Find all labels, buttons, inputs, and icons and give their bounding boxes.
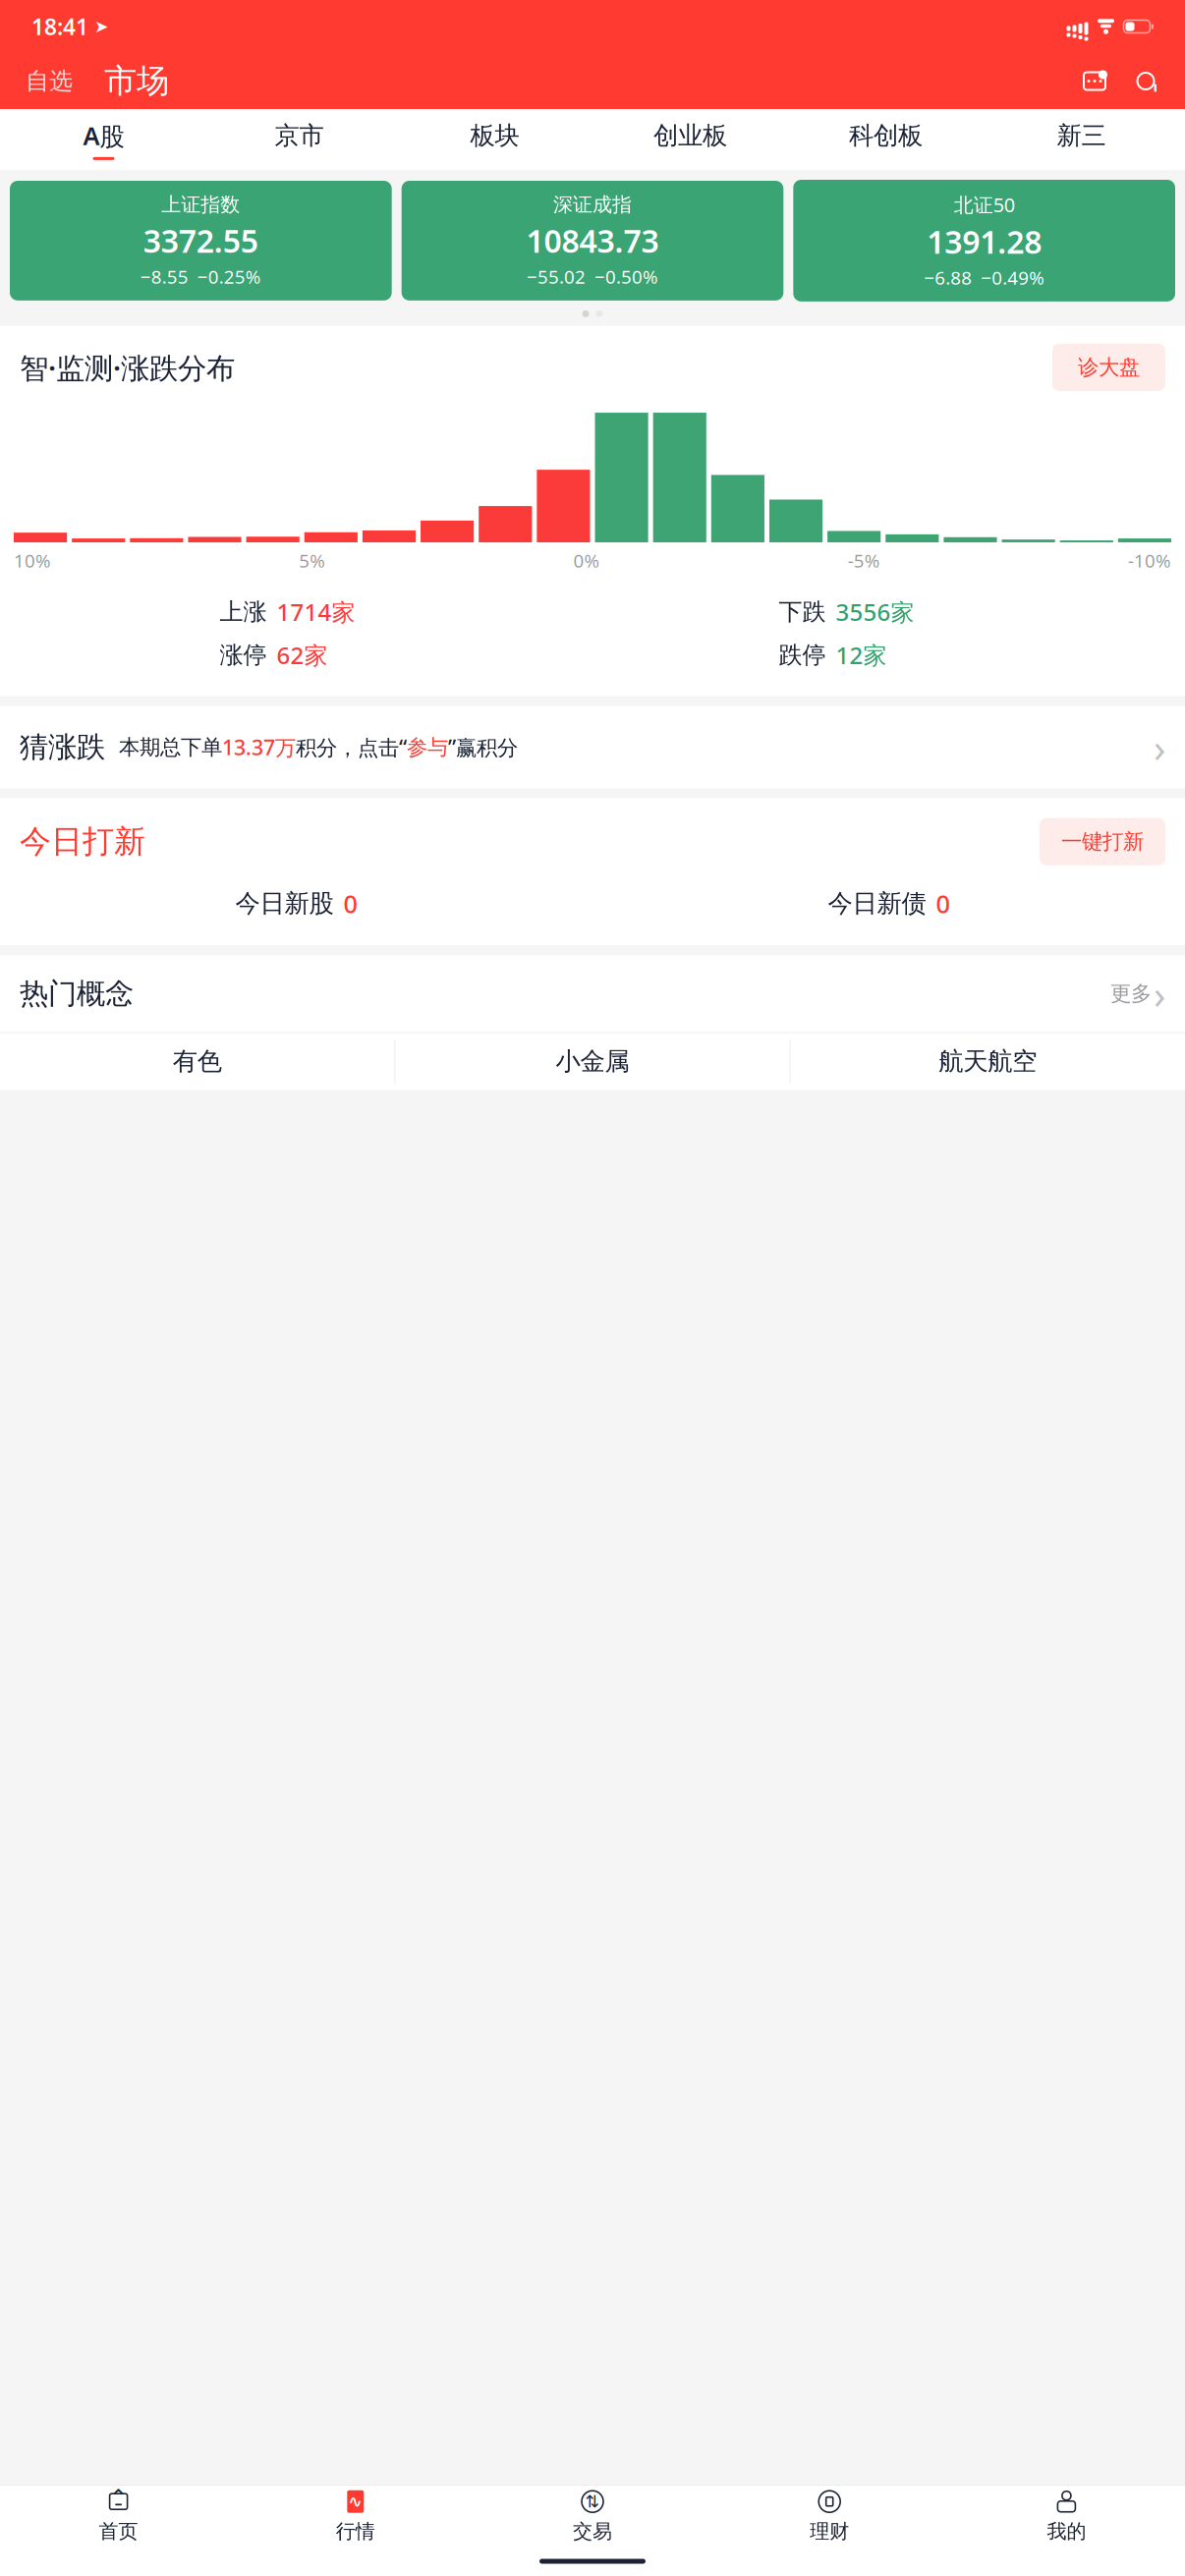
button[interactable]: 板块	[397, 109, 592, 170]
button[interactable]: 市场	[94, 57, 179, 105]
button[interactable]: 搜索	[1126, 61, 1165, 101]
staticText: 诊大盘	[1078, 354, 1140, 380]
button[interactable]: 猜涨跌	[0, 706, 1185, 789]
staticText: −55.02	[527, 264, 586, 289]
staticText: −8.55	[140, 264, 188, 289]
staticText: ➤	[88, 17, 109, 36]
staticText: −0.49%	[981, 265, 1045, 290]
button[interactable]: 更多	[1110, 968, 1165, 1020]
button[interactable]: 理财	[711, 2486, 948, 2547]
staticText: 0	[936, 887, 950, 920]
button[interactable]: 今日新股	[0, 887, 592, 920]
staticText: 新三	[1057, 120, 1106, 151]
staticText: -5%	[848, 548, 880, 573]
staticText: ∿	[348, 2492, 363, 2511]
button[interactable]: 我的	[948, 2486, 1185, 2547]
button[interactable]: ⌃	[0, 2486, 237, 2547]
staticText: 猜涨跌	[20, 730, 105, 765]
staticText: 0%	[573, 548, 600, 573]
button[interactable]: ⇅	[474, 2486, 711, 2547]
staticText: -10%	[1128, 548, 1171, 573]
staticText: 3372.55	[143, 220, 258, 261]
staticText: 10843.73	[526, 220, 659, 261]
staticText: ›	[1154, 968, 1165, 1020]
staticText: 更多	[1110, 981, 1152, 1007]
staticText: 航天航空	[939, 1046, 1037, 1077]
staticText: 涨停	[220, 640, 267, 669]
button[interactable]: 消息	[1075, 61, 1114, 101]
staticText: 参与	[407, 734, 448, 760]
staticText: 理财	[810, 2519, 849, 2543]
button[interactable]: 科创板	[788, 109, 984, 170]
staticText: 今日打新	[20, 822, 145, 861]
staticText: 科创板	[849, 120, 923, 151]
staticText: 62家	[277, 639, 328, 671]
staticText: 北证50	[954, 192, 1015, 218]
button[interactable]: 新三	[984, 109, 1179, 170]
staticText: 我的	[1047, 2519, 1086, 2543]
staticText: 上证指数	[161, 193, 240, 217]
staticText: 板块	[470, 120, 519, 151]
staticText: 今日新股	[235, 888, 334, 919]
button[interactable]: 一键打新	[1040, 818, 1165, 865]
button[interactable]: 有色	[0, 1033, 394, 1090]
button[interactable]: 京市	[201, 109, 397, 170]
staticText: 市场	[104, 61, 169, 101]
staticText: 深证成指	[553, 193, 632, 217]
staticText: 下跌	[779, 597, 826, 626]
button[interactable]: 今日新债	[592, 887, 1185, 920]
staticText: 有色	[173, 1046, 222, 1077]
staticText: 12家	[836, 639, 887, 671]
staticText: 3556家	[836, 596, 914, 627]
button[interactable]: 航天航空	[791, 1033, 1185, 1090]
button[interactable]: 自选	[20, 61, 79, 101]
staticText: 1714家	[277, 596, 355, 627]
staticText: 首页	[99, 2519, 138, 2543]
staticText: 一键打新	[1061, 829, 1144, 855]
staticText: 13.37万	[222, 733, 296, 761]
staticText: 上涨	[220, 597, 267, 626]
button[interactable]: A股	[6, 109, 201, 170]
staticText: −0.25%	[197, 264, 261, 289]
button[interactable]: 上证指数	[10, 181, 392, 301]
staticText: −0.50%	[594, 264, 658, 289]
staticText: 热门概念	[20, 976, 134, 1011]
staticText: 10%	[14, 548, 51, 573]
staticText: ”赢积分	[448, 733, 518, 761]
staticText: ›	[1154, 721, 1165, 773]
staticText: 小金属	[556, 1046, 629, 1077]
button[interactable]: 小金属	[395, 1033, 790, 1090]
staticText: 京市	[275, 120, 324, 151]
staticText: 1391.28	[927, 221, 1042, 262]
staticText: 今日新债	[828, 888, 926, 919]
staticText: 行情	[336, 2519, 375, 2543]
staticText: 交易	[573, 2519, 612, 2543]
staticText: ⌃	[109, 2485, 128, 2510]
staticText: A股	[83, 119, 124, 152]
staticText: ⇅	[585, 2492, 600, 2511]
staticText: 积分，点击“	[296, 733, 407, 761]
staticText: 自选	[26, 67, 73, 96]
staticText: 智·监测·涨跌分布	[20, 348, 235, 387]
staticText: 创业板	[653, 120, 727, 151]
staticText: −6.88	[924, 265, 972, 290]
staticText: 本期总下单	[119, 734, 222, 760]
button[interactable]: ∿	[237, 2486, 474, 2547]
staticText: 18:41	[31, 12, 88, 41]
staticText: 5%	[299, 548, 325, 573]
staticText: 0	[343, 887, 357, 920]
staticText: 跌停	[779, 640, 826, 669]
button[interactable]: 北证50	[793, 180, 1175, 301]
button[interactable]: 诊大盘	[1052, 344, 1165, 391]
button[interactable]: 创业板	[592, 109, 788, 170]
button[interactable]: 深证成指	[402, 181, 784, 301]
